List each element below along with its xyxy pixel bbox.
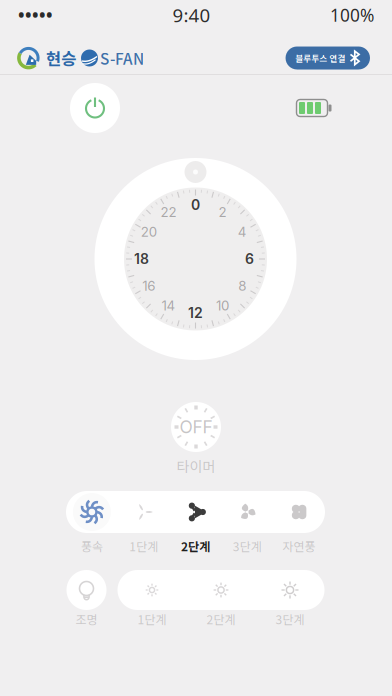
button[interactable]: Timer	[171, 402, 221, 452]
staticText: •••••	[18, 3, 53, 26]
staticText: 3단계	[275, 610, 304, 628]
button[interactable]: Light level 3	[255, 570, 324, 610]
staticText: 2	[218, 204, 226, 220]
button[interactable]: Fan speed 3	[221, 491, 273, 533]
staticText: 100%	[330, 3, 374, 26]
button[interactable]: Light level 1	[117, 570, 186, 610]
staticText: 10	[216, 298, 229, 314]
staticText: 14	[161, 298, 175, 314]
button[interactable]: Fan speed 1	[118, 491, 170, 533]
staticText: 블루투스 연결	[296, 52, 346, 64]
staticText: 12	[188, 304, 203, 321]
staticText: 16	[142, 278, 155, 294]
staticText: 2단계	[206, 610, 235, 628]
button[interactable]: Fan speed 0	[66, 491, 118, 533]
staticText: OFF	[179, 416, 212, 437]
staticText: S-FAN	[100, 47, 144, 69]
staticText: 20	[141, 224, 157, 240]
staticText: 3단계	[233, 537, 262, 555]
staticText: 자연풍	[283, 537, 316, 555]
button[interactable]: Light	[66, 570, 106, 610]
staticText: 현승	[46, 46, 76, 70]
staticText: 9:40	[172, 3, 210, 27]
staticText: 타이머	[176, 456, 215, 476]
staticText: 2단계	[181, 537, 210, 555]
staticText: 0	[191, 196, 200, 213]
button[interactable]: 블루투스 연결	[286, 46, 370, 69]
staticText: 조명	[75, 610, 97, 628]
staticText: 4	[238, 224, 247, 240]
button[interactable]: Fan speed 2	[170, 491, 221, 533]
staticText: 풍속	[81, 537, 103, 555]
staticText: 1단계	[137, 610, 166, 628]
staticText: 18	[134, 250, 149, 267]
button[interactable]: Power	[70, 83, 120, 133]
staticText: 22	[160, 204, 176, 220]
button[interactable]: Fan speed 4	[273, 491, 325, 533]
staticText: 8	[238, 278, 246, 294]
staticText: 1단계	[129, 537, 158, 555]
button[interactable]: Light level 2	[186, 570, 255, 610]
staticText: 6	[245, 250, 254, 267]
